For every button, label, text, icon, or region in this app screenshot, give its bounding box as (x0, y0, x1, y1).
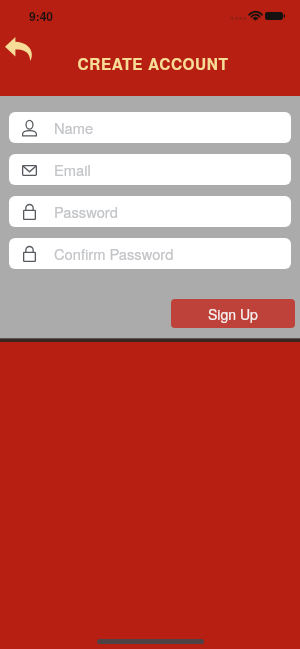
button[interactable]: Password (9, 196, 291, 227)
button[interactable]: Email (9, 154, 291, 185)
button[interactable]: Confirm Password (9, 238, 291, 269)
button[interactable]: Back (5, 37, 32, 61)
staticText: 9:40 (29, 7, 54, 24)
staticText: Confirm Password (54, 243, 174, 264)
staticText: Name (54, 117, 94, 138)
button[interactable]: Sign Up (171, 299, 295, 328)
button[interactable]: Name (9, 112, 291, 143)
staticText: Password (54, 201, 118, 222)
staticText: CREATE ACCOUNT (77, 53, 229, 75)
staticText: Email (54, 159, 91, 180)
staticText: Sign Up (208, 304, 258, 324)
